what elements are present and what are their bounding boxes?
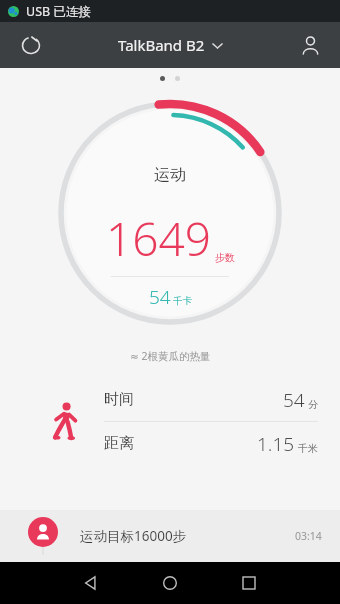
staticText: 1649 <box>106 207 212 270</box>
staticText: 运动 <box>154 165 186 185</box>
button[interactable]: Device <box>14 28 48 62</box>
button[interactable]: Home <box>153 566 187 600</box>
staticText: 54 <box>149 284 171 310</box>
staticText: 千米 <box>298 442 318 455</box>
button[interactable]: Recents <box>232 566 266 600</box>
staticText: 54 <box>283 387 305 413</box>
button[interactable]: TalkBand B2 <box>110 29 231 61</box>
staticText: 运动目标16000步 <box>80 527 187 545</box>
staticText: 分 <box>308 398 318 411</box>
staticText: 千卡 <box>173 295 192 307</box>
staticText: USB 已连接 <box>26 3 91 20</box>
staticText: TalkBand B2 <box>118 35 205 55</box>
button[interactable]: 时间 <box>104 378 340 421</box>
staticText: 时间 <box>104 390 134 409</box>
button[interactable]: 距离 <box>104 422 340 465</box>
staticText: 距离 <box>104 434 134 453</box>
button[interactable]: Account <box>292 27 328 63</box>
staticText: 1.15 <box>257 431 295 457</box>
button[interactable]: Back <box>74 566 108 600</box>
button[interactable]: Activity summary <box>49 92 291 334</box>
staticText: 03:14 <box>295 529 322 543</box>
staticText: ≈ 2根黄瓜的热量 <box>130 349 211 363</box>
button[interactable]: 运动目标16000步 <box>0 510 340 562</box>
staticText: 步数 <box>215 251 235 264</box>
